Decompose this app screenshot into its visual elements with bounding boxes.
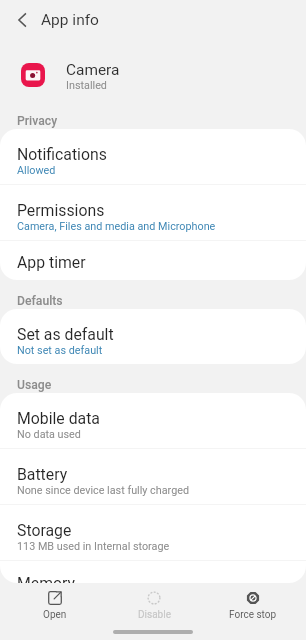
- button[interactable]: Permissions: [0, 185, 306, 240]
- staticText: Force stop: [229, 609, 277, 621]
- staticText: Camera: [66, 61, 120, 79]
- staticText: Permissions: [17, 201, 105, 220]
- staticText: Set as default: [17, 325, 114, 344]
- staticText: Camera, Files and media and Microphone: [17, 220, 216, 233]
- staticText: App info: [41, 11, 99, 29]
- button[interactable]: Set as default: [0, 309, 306, 364]
- staticText: Notifications: [17, 145, 107, 164]
- staticText: Usage: [17, 378, 52, 392]
- staticText: No data used: [17, 428, 81, 441]
- staticText: Memory: [17, 574, 75, 583]
- staticText: Allowed: [17, 164, 56, 177]
- staticText: Disable: [138, 609, 171, 621]
- staticText: Installed: [66, 79, 107, 92]
- button[interactable]: Disable: [105, 584, 203, 624]
- button[interactable]: App timer: [0, 241, 306, 280]
- button[interactable]: Open: [6, 584, 104, 624]
- staticText: App timer: [17, 253, 86, 272]
- staticText: Privacy: [17, 114, 58, 128]
- staticText: Mobile data: [17, 409, 100, 428]
- staticText: Not set as default: [17, 344, 103, 357]
- staticText: Battery: [17, 465, 68, 484]
- button[interactable]: Back: [0, 0, 44, 40]
- staticText: 113 MB used in Internal storage: [17, 540, 170, 553]
- button[interactable]: Force stop: [204, 584, 302, 624]
- staticText: Defaults: [17, 294, 63, 308]
- button[interactable]: Notifications: [0, 129, 306, 184]
- button[interactable]: Storage: [0, 505, 306, 560]
- button[interactable]: Battery: [0, 449, 306, 504]
- staticText: None since device last fully charged: [17, 484, 190, 497]
- staticText: Open: [43, 609, 67, 621]
- button[interactable]: Mobile data: [0, 393, 306, 448]
- staticText: Storage: [17, 521, 72, 540]
